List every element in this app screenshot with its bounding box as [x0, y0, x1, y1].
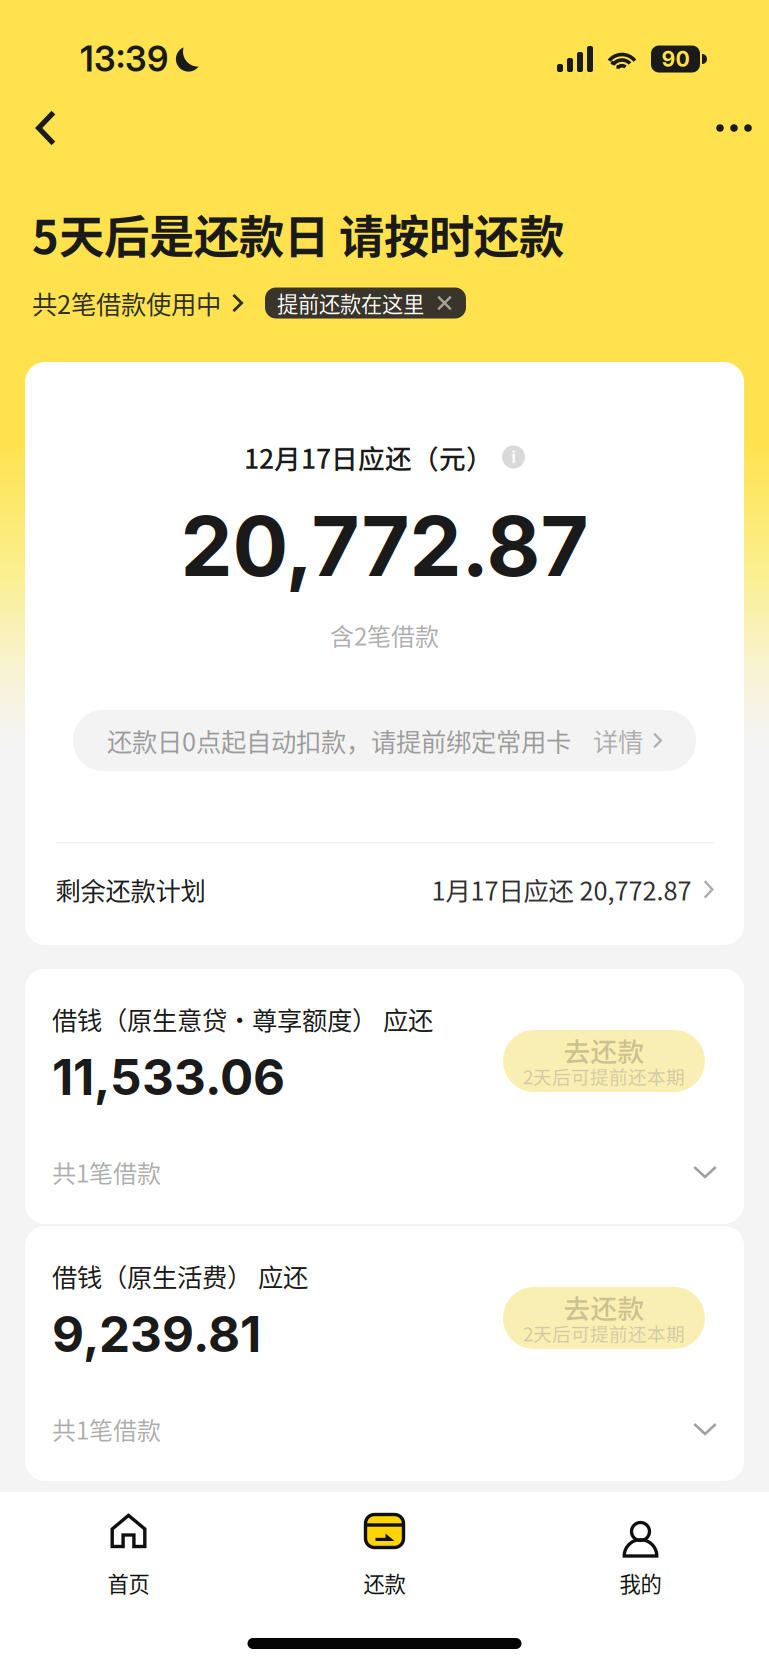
staticText: 借钱（原生意贷·尊享额度） 应还: [52, 1001, 433, 1037]
button[interactable]: 还款: [256, 1513, 512, 1595]
staticText: 2天后可提前还本期: [523, 1062, 685, 1089]
staticText: 9,239.81: [52, 1304, 261, 1364]
button[interactable]: 共2笔借款使用中: [32, 286, 243, 320]
staticText: 90: [661, 46, 689, 72]
staticText: 2天后可提前还本期: [523, 1319, 685, 1346]
staticText: 去还款: [563, 1031, 644, 1069]
staticText: 借钱（原生活费） 应还: [52, 1258, 308, 1294]
staticText: 共1笔借款: [52, 1155, 161, 1189]
button[interactable]: Back: [18, 103, 74, 153]
staticText: 共1笔借款: [52, 1412, 161, 1446]
staticText: 去还款: [563, 1288, 644, 1326]
button[interactable]: 去还款: [503, 1030, 705, 1092]
button[interactable]: 提前还款在这里: [265, 287, 466, 318]
button[interactable]: 去还款: [503, 1287, 705, 1349]
staticText: 11,533.06: [52, 1047, 285, 1107]
staticText: 首页: [107, 1568, 149, 1598]
staticText: 共2笔借款使用中: [32, 285, 221, 321]
button[interactable]: 还款日0点起自动扣款，请提前绑定常用卡: [73, 710, 696, 771]
staticText: 还款: [363, 1568, 405, 1598]
staticText: i: [511, 447, 515, 467]
staticText: 提前还款在这里: [277, 288, 424, 318]
button[interactable]: 首页: [0, 1513, 256, 1595]
staticText: 5天后是还款日 请按时还款: [32, 201, 564, 267]
staticText: 详情: [593, 722, 643, 759]
staticText: 12月17日应还（元）: [244, 438, 493, 476]
button[interactable]: 剩余还款计划: [55, 866, 713, 912]
staticText: 1月17日应还 20,772.87: [431, 871, 691, 908]
staticText: 我的: [619, 1568, 661, 1598]
staticText: 还款日0点起自动扣款，请提前绑定常用卡: [107, 722, 571, 759]
button[interactable]: 我的: [512, 1513, 768, 1595]
staticText: 含2笔借款: [330, 618, 439, 652]
staticText: 13:39: [80, 38, 168, 80]
staticText: 剩余还款计划: [55, 871, 205, 908]
staticText: 20,772.87: [180, 496, 588, 596]
button[interactable]: More: [706, 103, 762, 153]
